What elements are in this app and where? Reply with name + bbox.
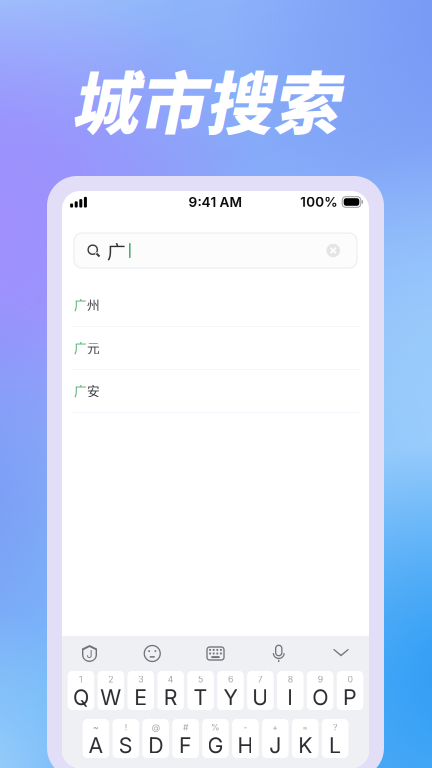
staticText: 广 bbox=[74, 381, 87, 399]
staticText: % bbox=[211, 722, 220, 733]
button[interactable]: # bbox=[172, 719, 199, 758]
button[interactable]: Emoji bbox=[143, 644, 161, 662]
staticText: 9 bbox=[318, 674, 323, 685]
staticText: L bbox=[329, 732, 341, 758]
button[interactable]: 0 bbox=[337, 671, 363, 710]
staticText: 州 bbox=[87, 295, 100, 313]
staticText: # bbox=[183, 722, 188, 733]
button[interactable]: 3 bbox=[127, 671, 154, 710]
staticText: 广 bbox=[74, 295, 87, 313]
button[interactable]: 2 bbox=[98, 671, 124, 710]
staticText: ? bbox=[333, 722, 337, 733]
staticText: = bbox=[302, 722, 308, 733]
button[interactable]: Voice input bbox=[270, 644, 288, 663]
staticText: - bbox=[243, 722, 247, 733]
staticText: I bbox=[287, 684, 293, 710]
staticText: W bbox=[100, 684, 121, 710]
staticText: 5 bbox=[198, 674, 203, 685]
staticText: Y bbox=[223, 684, 237, 710]
button[interactable]: 4 bbox=[157, 671, 184, 710]
button[interactable]: % bbox=[202, 719, 229, 758]
staticText: H bbox=[237, 732, 253, 758]
button[interactable]: 5 bbox=[187, 671, 214, 710]
staticText: Q bbox=[73, 684, 89, 710]
button[interactable]: 6 bbox=[217, 671, 244, 710]
staticText: U bbox=[252, 684, 268, 710]
button[interactable]: ~ bbox=[83, 719, 109, 758]
staticText: T bbox=[193, 684, 207, 710]
staticText: 7 bbox=[258, 674, 263, 685]
staticText: 100% bbox=[300, 194, 337, 210]
button[interactable]: 广 bbox=[62, 327, 369, 370]
staticText: 城市搜索 bbox=[71, 51, 339, 147]
button[interactable]: + bbox=[262, 719, 289, 758]
button[interactable]: 9 bbox=[307, 671, 333, 710]
staticText: F bbox=[179, 732, 192, 758]
button[interactable]: 1 bbox=[68, 671, 94, 710]
staticText: 0 bbox=[348, 674, 353, 685]
staticText: D bbox=[148, 732, 163, 758]
button[interactable]: 广 bbox=[62, 284, 369, 327]
staticText: 广 bbox=[74, 338, 87, 356]
staticText: J bbox=[269, 732, 281, 758]
staticText: ! bbox=[125, 722, 127, 733]
button[interactable]: - bbox=[232, 719, 259, 758]
staticText: G bbox=[207, 732, 223, 758]
staticText: P bbox=[343, 684, 357, 710]
staticText: R bbox=[164, 684, 178, 710]
staticText: ~ bbox=[93, 722, 99, 733]
staticText: K bbox=[298, 732, 312, 758]
button[interactable]: Keyboard layout bbox=[206, 644, 224, 662]
button[interactable]: = bbox=[292, 719, 318, 758]
staticText: 安 bbox=[87, 381, 100, 399]
button[interactable]: 广 bbox=[62, 370, 369, 413]
staticText: 9:41 AM bbox=[188, 194, 242, 210]
button[interactable]: ! bbox=[113, 719, 139, 758]
staticText: E bbox=[134, 684, 147, 710]
button[interactable]: 7 bbox=[247, 671, 274, 710]
staticText: @ bbox=[152, 722, 160, 733]
staticText: S bbox=[119, 732, 133, 758]
staticText: A bbox=[88, 732, 103, 758]
button[interactable]: Clear text bbox=[326, 244, 340, 257]
staticText: O bbox=[312, 684, 328, 710]
staticText: + bbox=[272, 722, 278, 733]
staticText: 元 bbox=[87, 338, 100, 356]
staticText: 4 bbox=[168, 674, 174, 685]
button[interactable]: 8 bbox=[277, 671, 303, 710]
staticText: 2 bbox=[108, 674, 113, 685]
button[interactable]: Privacy bbox=[81, 644, 98, 662]
button[interactable]: @ bbox=[142, 719, 169, 758]
staticText: J bbox=[86, 647, 92, 660]
staticText: 6 bbox=[228, 674, 233, 685]
button[interactable]: ? bbox=[322, 719, 348, 758]
staticText: 3 bbox=[138, 674, 143, 685]
staticText: 1 bbox=[79, 674, 83, 685]
button[interactable]: Hide keyboard bbox=[333, 649, 349, 658]
staticText: 广 bbox=[107, 237, 126, 264]
staticText: 8 bbox=[288, 674, 293, 685]
